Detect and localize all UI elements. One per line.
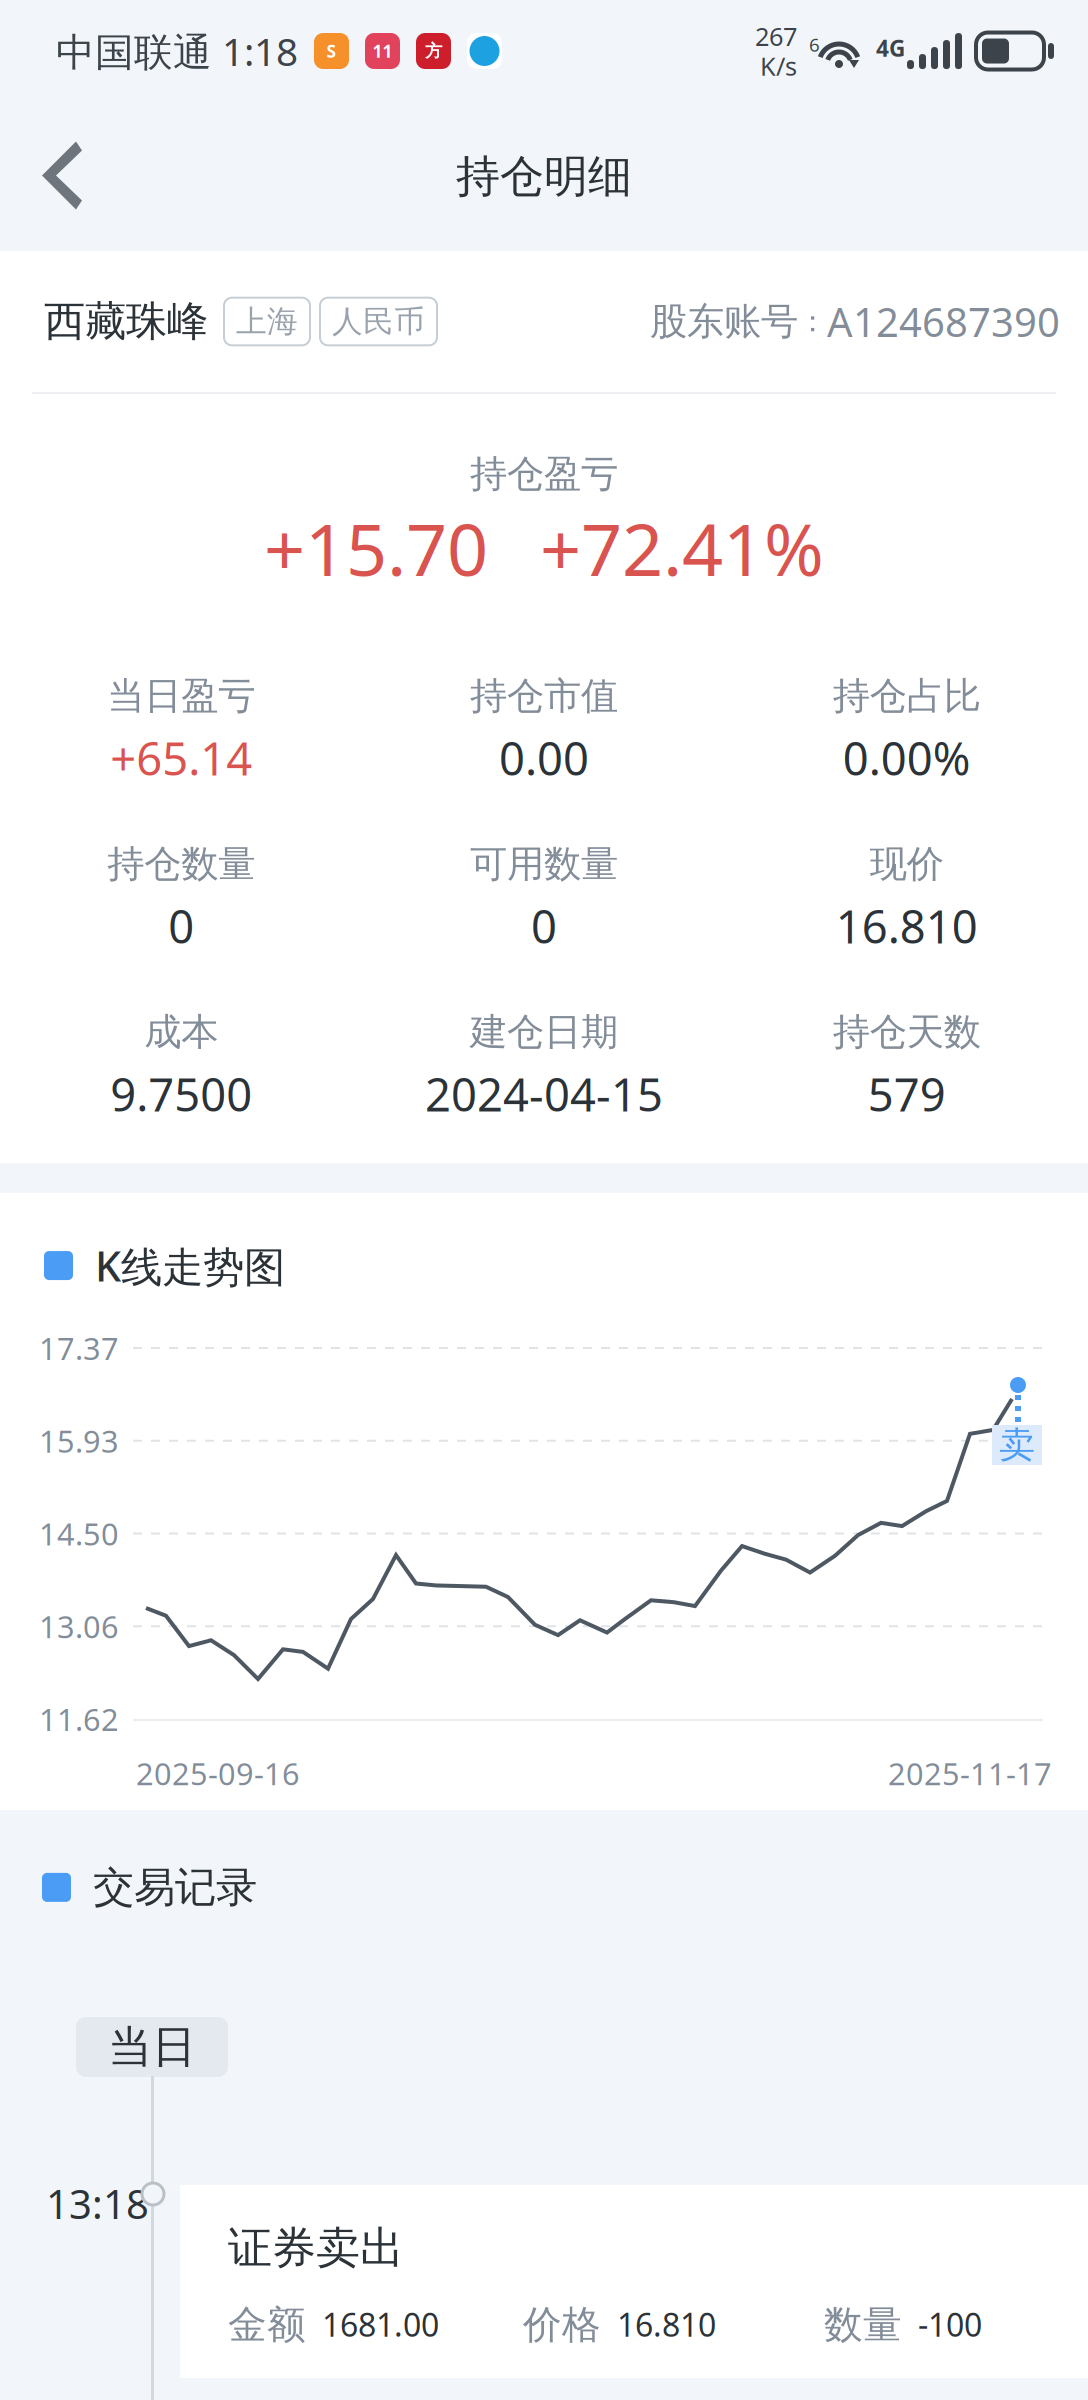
staticText: 人民币 [332,303,425,340]
staticText: 当日盈亏 [107,673,255,719]
staticText: 13.06 [39,1606,119,1647]
staticText: 15.93 [39,1420,119,1461]
staticText: 17.37 [39,1328,119,1368]
staticText: 成本 [144,1009,218,1055]
staticText: 可用数量 [470,841,618,887]
staticText: 持仓市值 [470,673,618,719]
staticText: +15.70 [264,500,488,596]
staticText: +65.14 [110,728,252,788]
staticText: 交易记录 [93,1862,257,1913]
staticText: 4G [876,33,905,63]
staticText: 579 [868,1064,946,1124]
staticText: 持仓盈亏 [470,451,618,497]
staticText: 0 [531,896,557,956]
staticText: 当日 [108,2020,196,2074]
staticText: 中国联通 1:18 [56,25,298,77]
staticText: 11 [372,39,392,62]
staticText: 持仓明细 [456,149,632,203]
staticText: 0 [168,896,194,956]
staticText: K/s [760,49,797,83]
button[interactable]: 证券卖出 [180,2185,1088,2378]
staticText: 1681.00 [322,2303,439,2345]
staticText: 13:18 [46,2177,149,2230]
staticText: 上海 [236,303,298,340]
staticText: 0.00 [499,728,589,788]
staticText: 持仓天数 [833,1009,981,1055]
staticText: 0.00% [843,728,971,788]
staticText: 2024-04-15 [425,1064,663,1124]
staticText: 持仓占比 [833,673,981,719]
staticText: 西藏珠峰 [44,296,208,347]
staticText: 卖 [999,1423,1035,1467]
staticText: 16.810 [617,2303,716,2345]
staticText: 股东账号 [650,299,798,344]
staticText: 金额 [228,2301,306,2348]
staticText: 16.810 [836,896,978,956]
staticText: 数量 [824,2301,902,2348]
staticText: +72.41% [540,500,824,596]
staticText: 14.50 [39,1513,119,1554]
staticText: 现价 [870,841,944,887]
staticText: 证券卖出 [228,2221,404,2275]
staticText: 11.62 [39,1699,119,1739]
staticText: 2025-11-17 [888,1753,1052,1794]
staticText: 9.7500 [110,1064,252,1124]
staticText: 价格 [523,2301,601,2348]
staticText: 2025-09-16 [136,1753,300,1794]
staticText: 6 [809,32,820,57]
staticText: ： [798,303,827,339]
staticText: S [326,39,336,62]
staticText: A124687390 [827,295,1060,348]
staticText: 267 [755,19,797,53]
staticText: 方 [425,40,442,62]
button[interactable]: Back [0,111,128,241]
staticText: 建仓日期 [470,1009,618,1055]
staticText: 持仓数量 [107,841,255,887]
staticText: K线走势图 [95,1238,285,1293]
staticText: -100 [918,2303,982,2345]
